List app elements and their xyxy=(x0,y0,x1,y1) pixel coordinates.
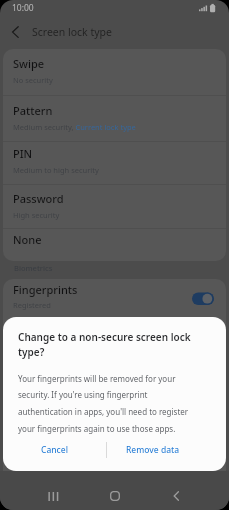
staticText: Change to a non-secure screen lock type? xyxy=(18,330,191,359)
staticText: Swipe xyxy=(13,56,45,71)
staticText: None xyxy=(13,232,42,247)
button[interactable] xyxy=(33,482,73,510)
staticText: Remove data xyxy=(126,444,180,456)
button[interactable] xyxy=(95,482,135,510)
button[interactable]: Pattern xyxy=(3,96,226,141)
button[interactable]: Swipe xyxy=(3,49,226,95)
staticText: High security xyxy=(13,210,60,220)
button[interactable]: None xyxy=(3,229,226,261)
staticText: Medium security, Current lock type xyxy=(13,122,136,132)
staticText: Biometrics xyxy=(14,263,53,273)
staticText: PIN xyxy=(13,146,33,161)
staticText: Screen lock type xyxy=(32,25,112,39)
staticText: Your fingerprints will be removed for yo… xyxy=(18,373,189,434)
staticText: Registered xyxy=(13,300,51,310)
staticText: Password xyxy=(13,191,64,206)
button[interactable]: PIN xyxy=(3,142,226,184)
staticText: Fingerprints xyxy=(13,282,78,297)
staticText: 10:00 xyxy=(12,2,34,14)
staticText: Pattern xyxy=(13,103,53,118)
button[interactable] xyxy=(192,292,214,305)
button[interactable]: Password xyxy=(3,185,226,228)
staticText: Cancel xyxy=(41,444,68,456)
staticText: Medium to high security xyxy=(13,165,99,175)
button[interactable] xyxy=(7,23,25,41)
button[interactable]: Fingerprints xyxy=(3,279,226,323)
button[interactable]: Cancel xyxy=(3,437,106,463)
button[interactable]: Remove data xyxy=(107,437,198,463)
button[interactable] xyxy=(156,482,196,510)
staticText: No security xyxy=(13,75,53,85)
